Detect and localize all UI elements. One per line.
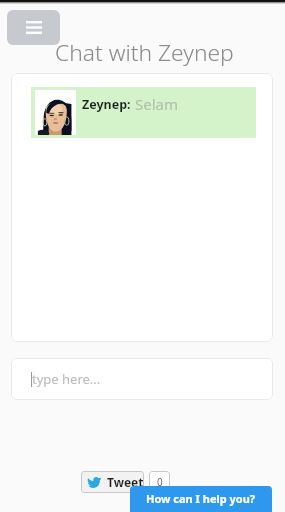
staticText: 0 (157, 475, 163, 489)
staticText: Selam (135, 94, 179, 114)
staticText: Tweet (107, 474, 144, 490)
staticText: type here... (32, 370, 101, 388)
button[interactable]: How can I help you? (130, 486, 272, 512)
button[interactable]: Zeynep: (31, 87, 256, 138)
button[interactable]: Tweet (81, 471, 144, 493)
staticText: How can I help you? (146, 491, 256, 506)
staticText: Zeynep: (82, 96, 131, 113)
button[interactable]: 0 (149, 471, 170, 493)
staticText: Chat with Zeynep (55, 37, 234, 68)
button[interactable]: Menu (7, 10, 60, 45)
button[interactable]: type here... (11, 358, 273, 400)
